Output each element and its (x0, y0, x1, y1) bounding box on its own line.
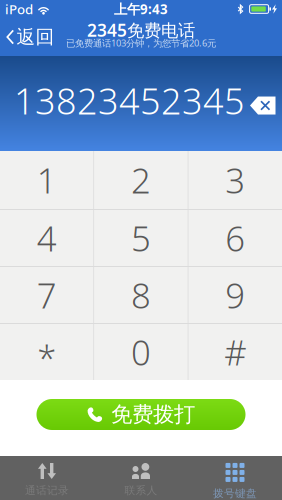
staticText: iPod (5, 0, 33, 18)
button[interactable]: 1 (0, 151, 93, 209)
staticText: 上午9:43 (114, 0, 168, 18)
staticText: 联系人 (124, 484, 157, 497)
button[interactable]: 免费拨打 (36, 399, 245, 430)
staticText: 2 (131, 157, 151, 203)
staticText: 13823452345 (14, 77, 245, 124)
button[interactable]: 5 (94, 210, 188, 266)
staticText: 返回 (16, 25, 54, 48)
button[interactable]: Delete (250, 96, 276, 115)
button[interactable]: 通话记录 (0, 456, 94, 500)
button[interactable]: 返回 (0, 18, 62, 56)
staticText: 7 (37, 272, 57, 318)
button[interactable]: 拨号键盘 (188, 456, 282, 500)
staticText: 2345免费电话 (87, 18, 195, 41)
staticText: 3 (225, 157, 245, 203)
staticText: 免费拨打 (111, 401, 195, 428)
staticText: 拨号键盘 (213, 487, 257, 500)
staticText: 8 (131, 272, 151, 318)
staticText: 5 (131, 215, 151, 261)
button[interactable]: 8 (94, 267, 188, 323)
staticText: 0 (131, 329, 151, 375)
staticText: * (37, 335, 56, 381)
staticText: # (224, 329, 246, 375)
button[interactable]: 3 (189, 151, 282, 209)
staticText: 1 (37, 157, 57, 203)
button[interactable]: 4 (0, 210, 93, 266)
button[interactable]: 2 (94, 151, 188, 209)
button[interactable]: # (189, 324, 282, 380)
button[interactable]: 0 (94, 324, 188, 380)
button[interactable]: * (0, 324, 93, 380)
button[interactable]: 6 (189, 210, 282, 266)
staticText: 6 (225, 215, 245, 261)
button[interactable]: 联系人 (94, 456, 188, 500)
button[interactable]: 7 (0, 267, 93, 323)
staticText: 已免费通话103分钟，为您节省20.6元 (66, 37, 216, 49)
staticText: 4 (37, 215, 57, 261)
staticText: 通话记录 (25, 484, 69, 497)
staticText: 9 (225, 272, 245, 318)
button[interactable]: 9 (189, 267, 282, 323)
